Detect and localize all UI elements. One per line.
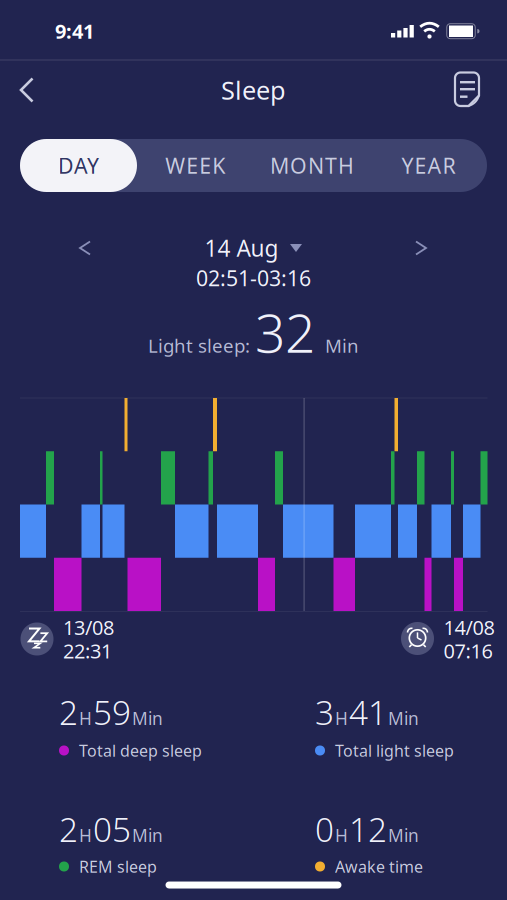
staticText: Min: [315, 333, 359, 358]
staticText: 07:16: [443, 637, 492, 664]
staticText: H: [79, 707, 92, 730]
staticText: 2: [59, 690, 78, 734]
staticText: 2: [59, 807, 78, 851]
staticText: H: [335, 707, 348, 730]
staticText: 13/08: [63, 614, 114, 640]
staticText: 3: [315, 690, 334, 734]
button[interactable]: Previous day: [63, 226, 107, 270]
button[interactable]: WEEK: [137, 139, 254, 192]
staticText: Light sleep:: [148, 333, 255, 358]
staticText: MONTH: [270, 151, 354, 180]
staticText: Min: [388, 824, 419, 847]
staticText: Total light sleep: [335, 740, 454, 761]
staticText: H: [79, 824, 92, 847]
staticText: WEEK: [165, 151, 225, 180]
staticText: 59: [93, 690, 131, 734]
staticText: Awake time: [335, 856, 423, 877]
staticText: 05: [93, 807, 131, 851]
button[interactable]: Sleep notes: [445, 67, 489, 111]
staticText: Total deep sleep: [79, 740, 202, 761]
staticText: Min: [388, 707, 419, 730]
staticText: H: [335, 824, 348, 847]
staticText: 22:31: [63, 637, 112, 664]
button[interactable]: Select date: [204, 233, 302, 263]
staticText: REM sleep: [79, 856, 157, 877]
button[interactable]: Back: [5, 68, 49, 112]
staticText: 02:51-03:16: [196, 264, 311, 292]
staticText: 0: [315, 807, 334, 851]
button[interactable]: Next day: [399, 226, 443, 270]
staticText: 9:41: [55, 18, 94, 44]
staticText: Min: [132, 824, 163, 847]
staticText: 14 Aug: [204, 233, 278, 263]
staticText: 12: [349, 807, 387, 851]
staticText: YEAR: [402, 151, 456, 180]
staticText: 32: [255, 297, 315, 367]
staticText: 14/08: [443, 614, 494, 640]
button[interactable]: MONTH: [253, 139, 370, 192]
staticText: DAY: [58, 151, 99, 180]
staticText: Min: [132, 707, 163, 730]
staticText: Sleep: [221, 73, 286, 107]
button[interactable]: YEAR: [370, 139, 487, 192]
staticText: 41: [349, 690, 387, 734]
button[interactable]: DAY: [20, 139, 137, 192]
